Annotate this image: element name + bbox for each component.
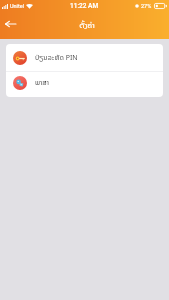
staticText: ປ່ຽນລະຫັດ PIN: [35, 53, 78, 63]
button[interactable]: ພາສາ: [6, 72, 163, 97]
staticText: 11:22 AM: [70, 2, 99, 10]
staticText: ພາສາ: [35, 78, 49, 88]
staticText: ຕັ້ງຄ່າ: [79, 19, 95, 30]
staticText: 27%: [141, 3, 152, 9]
button[interactable]: Back: [0, 14, 20, 34]
button[interactable]: ປ່ຽນລະຫັດ PIN: [6, 44, 163, 71]
staticText: Unitel: [10, 3, 24, 9]
